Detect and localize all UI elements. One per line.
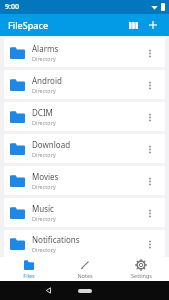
staticText: Directory	[32, 151, 56, 158]
staticText: FileSpace	[8, 19, 49, 31]
button[interactable]: Files	[0, 257, 57, 281]
staticText: Directory	[32, 87, 56, 94]
button[interactable]: Settings	[113, 257, 169, 281]
other: Home	[78, 289, 92, 293]
staticText: 9:00	[5, 2, 19, 12]
button[interactable]: More options for Movies	[141, 172, 159, 190]
button[interactable]: Music	[4, 198, 165, 227]
staticText: Download	[32, 139, 71, 150]
button[interactable]: Notifications	[4, 230, 165, 257]
button[interactable]: Movies	[4, 166, 165, 195]
staticText: Alarms	[32, 43, 59, 54]
staticText: Directory	[32, 246, 56, 253]
button[interactable]: More options for Music	[141, 204, 159, 222]
staticText: Directory	[32, 55, 56, 62]
staticText: Notifications	[32, 234, 80, 245]
button[interactable]: Grid view	[123, 15, 143, 35]
button[interactable]: More options for Download	[141, 140, 159, 158]
button[interactable]: Alarms	[4, 38, 165, 67]
staticText: Music	[32, 203, 54, 214]
staticText: Directory	[32, 183, 56, 190]
staticText: Settings	[131, 272, 152, 279]
other: Back	[45, 287, 52, 294]
button[interactable]: More options for Android	[141, 76, 159, 94]
button[interactable]: More options for Notifications	[141, 235, 159, 253]
button[interactable]: Android	[4, 70, 165, 99]
staticText: Files	[23, 272, 35, 279]
staticText: Directory	[32, 119, 56, 126]
staticText: Directory	[32, 215, 56, 222]
staticText: Android	[32, 75, 62, 86]
button[interactable]: Notes	[57, 257, 113, 281]
staticText: DCIM	[32, 107, 53, 118]
button[interactable]: More options for Alarms	[141, 44, 159, 62]
button[interactable]: Download	[4, 134, 165, 163]
button[interactable]: More options for DCIM	[141, 108, 159, 126]
button[interactable]: Add	[143, 15, 163, 35]
staticText: Movies	[32, 171, 59, 182]
button[interactable]: DCIM	[4, 102, 165, 131]
staticText: Notes	[77, 272, 93, 279]
